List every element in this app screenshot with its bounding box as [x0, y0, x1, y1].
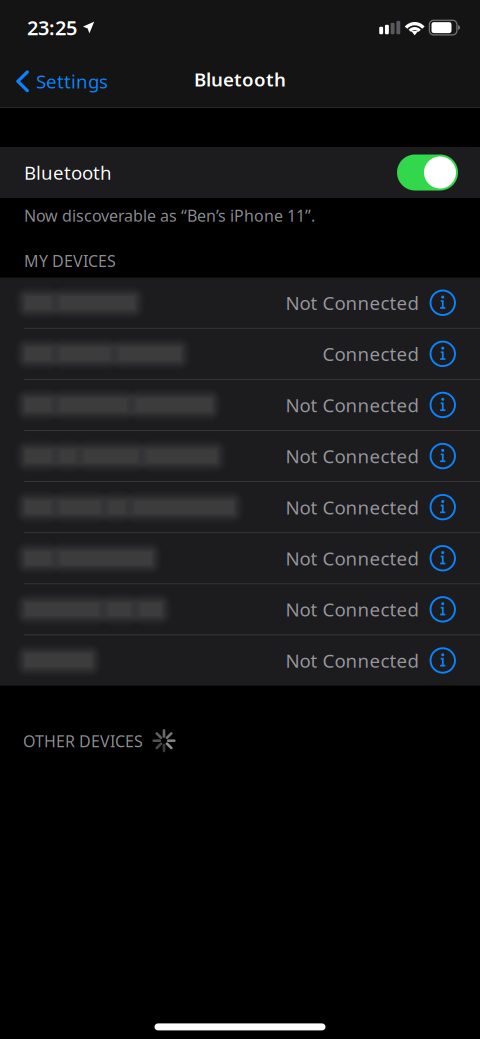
staticText: 23:25 [27, 14, 77, 41]
button[interactable]: Bluetooth [0, 147, 480, 198]
button[interactable]: Not Connected [0, 380, 480, 430]
staticText: Bluetooth [194, 67, 286, 92]
button[interactable]: Not Connected [0, 533, 480, 583]
staticText: MY DEVICES [24, 250, 116, 271]
button[interactable]: Connected [0, 329, 480, 379]
staticText: Settings [36, 69, 108, 94]
button[interactable]: Not Connected [0, 584, 480, 634]
staticText: Not Connected [285, 393, 418, 417]
button[interactable]: Not Connected [0, 431, 480, 481]
staticText: Not Connected [285, 290, 418, 315]
staticText: Not Connected [285, 495, 418, 520]
staticText: Not Connected [285, 546, 418, 571]
button[interactable]: Not Connected [0, 482, 480, 532]
staticText: Bluetooth [24, 160, 112, 185]
staticText: Now discoverable as “Ben’s iPhone 11”. [24, 205, 315, 226]
staticText: Not Connected [285, 597, 418, 622]
button[interactable]: Not Connected [0, 635, 480, 686]
staticText: Not Connected [285, 648, 418, 673]
staticText: Not Connected [285, 444, 418, 468]
button[interactable]: Not Connected [0, 278, 480, 328]
button[interactable]: Settings [0, 55, 118, 107]
staticText: Connected [322, 341, 418, 366]
staticText: OTHER DEVICES [23, 730, 143, 752]
